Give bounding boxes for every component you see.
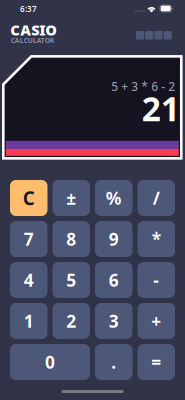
button[interactable]: 9 (95, 221, 132, 257)
button[interactable]: + (137, 303, 175, 339)
button[interactable]: 6 (95, 262, 132, 298)
staticText: 21 (142, 86, 180, 131)
staticText: 3 (109, 309, 119, 332)
staticText: . (111, 350, 116, 373)
staticText: / (153, 186, 160, 209)
staticText: 8 (66, 227, 76, 250)
button[interactable]: 1 (10, 303, 47, 339)
staticText: 0 (45, 350, 55, 373)
button[interactable]: % (95, 180, 132, 216)
staticText: 4 (24, 268, 34, 291)
button[interactable]: * (137, 221, 175, 257)
button[interactable]: 8 (52, 221, 90, 257)
button[interactable]: 7 (10, 221, 47, 257)
staticText: ± (66, 186, 76, 209)
button[interactable]: . (95, 344, 132, 380)
staticText: = (151, 350, 161, 373)
staticText: 6:37 (20, 4, 37, 14)
staticText: CALCULATOR (11, 36, 54, 45)
staticText: 9 (109, 227, 119, 250)
staticText: CASIO (10, 20, 57, 39)
button[interactable]: / (137, 180, 175, 216)
button[interactable]: 5 (52, 262, 90, 298)
staticText: 1 (24, 309, 34, 332)
button[interactable]: 0 (10, 344, 90, 380)
staticText: % (106, 186, 122, 209)
button[interactable]: C (10, 180, 47, 216)
staticText: + (151, 309, 161, 332)
button[interactable]: ± (52, 180, 90, 216)
button[interactable]: 2 (52, 303, 90, 339)
staticText: 7 (24, 227, 34, 250)
button[interactable]: - (137, 262, 175, 298)
button[interactable]: 4 (10, 262, 47, 298)
button[interactable]: = (137, 344, 175, 380)
staticText: * (152, 227, 161, 250)
staticText: C (23, 186, 35, 210)
staticText: 5 + 3 * 6 - 2 (111, 78, 175, 94)
button[interactable]: 3 (95, 303, 132, 339)
staticText: 6 (109, 268, 119, 291)
staticText: - (153, 268, 159, 291)
staticText: 2 (66, 309, 76, 332)
staticText: 5 (66, 268, 76, 291)
